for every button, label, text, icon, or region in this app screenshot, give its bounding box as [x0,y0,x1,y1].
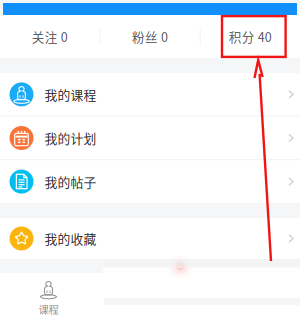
button[interactable]: 我的收藏 [0,218,300,259]
staticText: 粉丝 0 [132,27,168,45]
staticText: 课程 [38,302,58,317]
staticText: 我的收藏 [44,229,96,248]
staticText: 积分 40 [229,27,272,45]
staticText: 我的计划 [44,129,96,147]
button[interactable]: 关注 0 [0,15,99,58]
button[interactable]: 我的课程 [0,73,300,116]
button[interactable]: 粉丝 0 [100,15,200,58]
button[interactable]: 我的计划 [0,117,300,159]
button[interactable]: 我的帖子 [0,160,300,203]
button[interactable]: 课程 [0,273,97,330]
staticText: 关注 0 [32,27,68,45]
button[interactable]: 积分 40 [201,15,300,58]
staticText: 我的课程 [44,85,96,104]
staticText: 我的帖子 [44,172,96,191]
